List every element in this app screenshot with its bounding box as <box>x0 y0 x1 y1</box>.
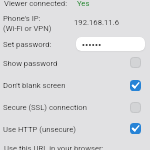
staticText: Don't blank screen <box>3 81 66 90</box>
button[interactable]: Secure (SSL) connection <box>130 102 141 113</box>
button[interactable]: Use HTTP (unsecure) <box>130 123 141 134</box>
staticText: (Wi-Fi or VPN) <box>3 24 52 33</box>
staticText: Use HTTP (unsecure) <box>3 125 77 134</box>
staticText: Yes <box>77 0 90 8</box>
staticText: 192.168.11.6 <box>74 18 119 27</box>
staticText: Show password <box>3 59 58 68</box>
button[interactable]: Show password <box>130 57 141 68</box>
staticText: Viewer connected: <box>4 0 67 8</box>
staticText: Secure (SSL) connection <box>3 103 87 112</box>
staticText: Set password: <box>3 40 52 49</box>
button[interactable]: Password field <box>76 37 145 51</box>
button[interactable]: Don't blank screen <box>130 80 141 91</box>
staticText: Use this URL in your browser: <box>4 144 104 150</box>
staticText: Phone's IP: <box>3 14 41 23</box>
